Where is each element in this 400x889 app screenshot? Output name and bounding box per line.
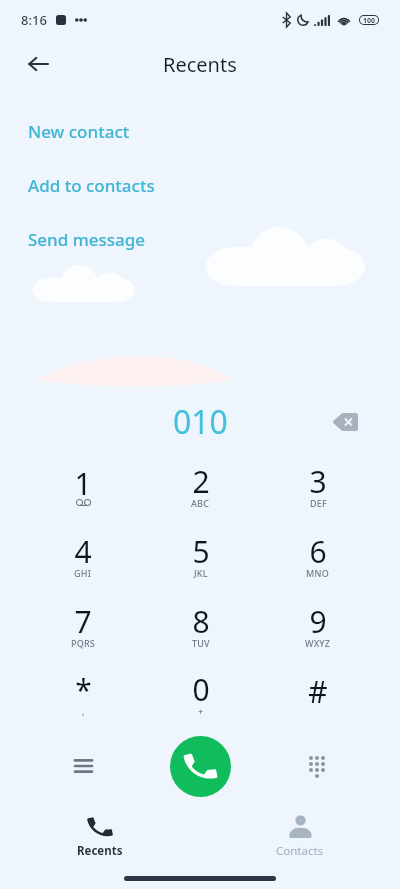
staticText: 5: [192, 531, 210, 572]
staticText: 3: [309, 461, 327, 502]
button[interactable]: Back: [20, 46, 56, 82]
staticText: Contacts: [276, 843, 324, 859]
staticText: Recents: [77, 843, 123, 859]
button[interactable]: New contact: [28, 120, 130, 143]
button[interactable]: Send message: [28, 228, 146, 251]
staticText: PQRS: [71, 637, 95, 649]
staticText: +: [198, 705, 204, 717]
button[interactable]: *: [24, 663, 142, 733]
staticText: DEF: [310, 497, 327, 509]
staticText: GHI: [74, 567, 92, 579]
staticText: 1: [74, 463, 92, 504]
staticText: Recents: [163, 51, 237, 78]
button[interactable]: #: [259, 663, 376, 733]
button[interactable]: Call: [170, 736, 231, 797]
button[interactable]: Contacts: [200, 805, 400, 867]
button[interactable]: 9: [259, 593, 376, 663]
staticText: 100: [363, 16, 376, 24]
button[interactable]: 7: [24, 593, 142, 663]
button[interactable]: 4: [24, 523, 142, 593]
staticText: Send message: [28, 228, 146, 251]
button[interactable]: 2: [142, 453, 259, 523]
button[interactable]: 0: [142, 663, 259, 733]
button[interactable]: 3: [259, 453, 376, 523]
staticText: MNO: [306, 567, 329, 579]
button[interactable]: 6: [259, 523, 376, 593]
staticText: ABC: [191, 497, 210, 509]
staticText: 8: [192, 601, 210, 642]
button[interactable]: Dialpad: [298, 748, 340, 790]
button[interactable]: Add to contacts: [28, 174, 155, 197]
staticText: 8:16: [21, 11, 47, 29]
staticText: 4: [74, 531, 92, 572]
staticText: 010: [173, 400, 228, 444]
staticText: 6: [309, 531, 327, 572]
button[interactable]: 1: [24, 453, 142, 523]
staticText: WXYZ: [305, 637, 331, 649]
button[interactable]: Backspace: [324, 401, 366, 443]
staticText: JKL: [194, 567, 208, 579]
button[interactable]: 5: [142, 523, 259, 593]
staticText: Add to contacts: [28, 174, 155, 197]
staticText: 0: [192, 669, 210, 710]
button[interactable]: 8: [142, 593, 259, 663]
button[interactable]: Call options: [62, 748, 104, 790]
staticText: 9: [309, 601, 327, 642]
staticText: #: [308, 671, 328, 712]
staticText: TUV: [192, 637, 210, 649]
staticText: ,: [82, 705, 85, 717]
staticText: *: [75, 669, 92, 710]
staticText: New contact: [28, 120, 130, 143]
button[interactable]: Recents: [0, 805, 200, 867]
staticText: 2: [192, 461, 210, 502]
staticText: 7: [74, 601, 92, 642]
